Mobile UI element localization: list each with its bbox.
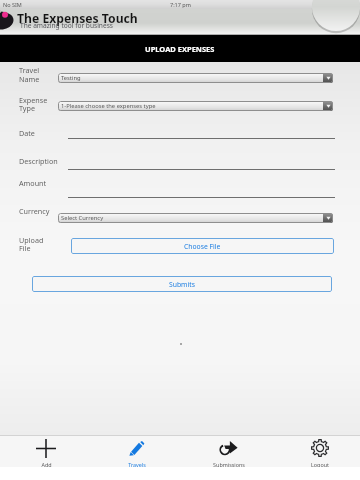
staticText: Travel [19, 65, 40, 75]
button[interactable]: Add [24, 435, 68, 467]
staticText: Name [19, 74, 40, 84]
staticText: UPLOAD EXPENSES [145, 44, 215, 54]
staticText: Choose File [184, 242, 221, 251]
button[interactable]: Travels [115, 435, 159, 467]
staticText: Select Currency [61, 214, 104, 222]
staticText: Description [19, 156, 58, 166]
staticText: Expense [19, 95, 48, 105]
button[interactable]: Submits [32, 276, 332, 292]
button[interactable]: Choose File [71, 238, 334, 254]
staticText: 1-Please choose the expenses type [61, 102, 156, 110]
staticText: The Expenses Touch [17, 10, 138, 27]
staticText: 7:17 pm [170, 1, 191, 8]
staticText: Testing [61, 74, 81, 82]
button[interactable]: 1-Please choose the expenses type [58, 101, 333, 111]
staticText: Add [41, 461, 52, 467]
button[interactable]: Select Currency [58, 213, 333, 223]
staticText: File [19, 243, 31, 253]
staticText: Submissions [213, 461, 245, 467]
staticText: Amount [19, 178, 47, 188]
staticText: Date [19, 128, 35, 138]
staticText: The amazing tool for business [20, 21, 113, 30]
staticText: Type [19, 103, 35, 113]
staticText: Submits [169, 280, 195, 289]
staticText: Currency [19, 206, 50, 216]
staticText: Travels [128, 461, 146, 467]
staticText: No SIM [3, 1, 22, 8]
staticText: Upload [19, 235, 44, 245]
button[interactable]: Testing [58, 73, 333, 83]
staticText: Logout [311, 461, 329, 467]
button[interactable]: Logout [298, 435, 342, 467]
button[interactable]: Submissions [207, 435, 251, 467]
